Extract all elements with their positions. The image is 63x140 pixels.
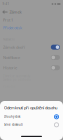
button[interactable]: Back [1,8,8,16]
button[interactable]: Přidat otisk [0,23,63,31]
button[interactable]: Silné stisknutí [0,121,63,129]
staticText: Zámek [9,9,21,15]
staticText: Odemknutí při opuštění dosahu [4,105,57,110]
button[interactable]: Zámek dveří [0,42,63,52]
button[interactable]: Dlouhý stisk [0,113,63,121]
staticText: Přidat otisk [3,25,22,30]
staticText: Zámek dveří [3,44,25,50]
button[interactable]: Notifikace [0,52,63,63]
staticText: Prst 1 [3,17,13,23]
staticText: Dlouhý stisk [4,115,20,118]
staticText: Historie [3,65,17,70]
staticText: Silné stisknutí [4,123,23,126]
staticText: Notifikace [3,55,20,60]
button[interactable]: Historie [0,63,63,73]
staticText: 9:41 [3,2,10,6]
